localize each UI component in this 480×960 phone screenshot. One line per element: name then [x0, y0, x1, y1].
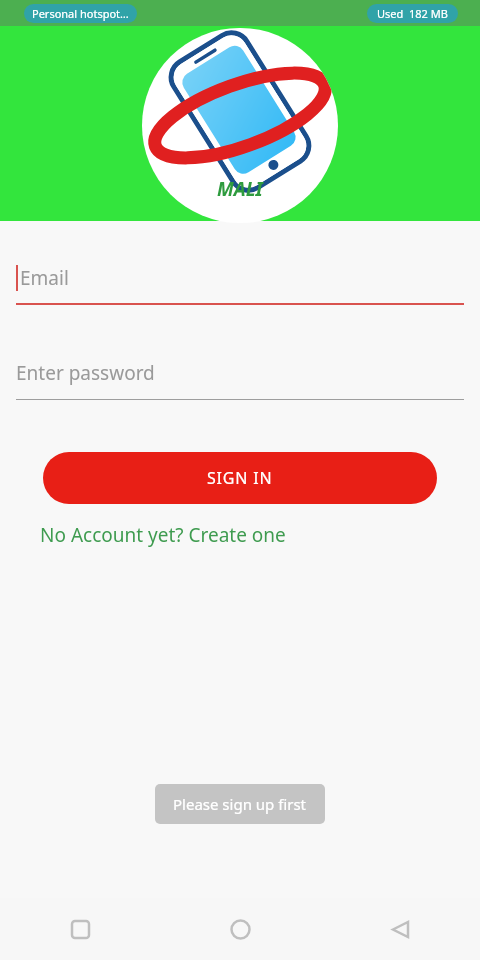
staticText: Please sign up first	[173, 794, 307, 814]
button[interactable]: Recents	[0, 898, 160, 960]
staticText: Email	[20, 265, 69, 291]
button[interactable]: Back	[320, 898, 480, 960]
staticText: Enter password	[16, 360, 155, 386]
staticText: Personal hotspot…	[32, 6, 129, 21]
staticText: MALI	[217, 176, 263, 202]
button[interactable]: Email	[16, 265, 464, 305]
button[interactable]: No Account yet? Create one	[40, 522, 286, 548]
staticText: SIGN IN	[207, 467, 273, 489]
button[interactable]: Enter password	[16, 360, 464, 400]
staticText: Used 182 MB	[377, 6, 448, 21]
button[interactable]: Home	[160, 898, 320, 960]
button[interactable]: SIGN IN	[43, 452, 437, 504]
